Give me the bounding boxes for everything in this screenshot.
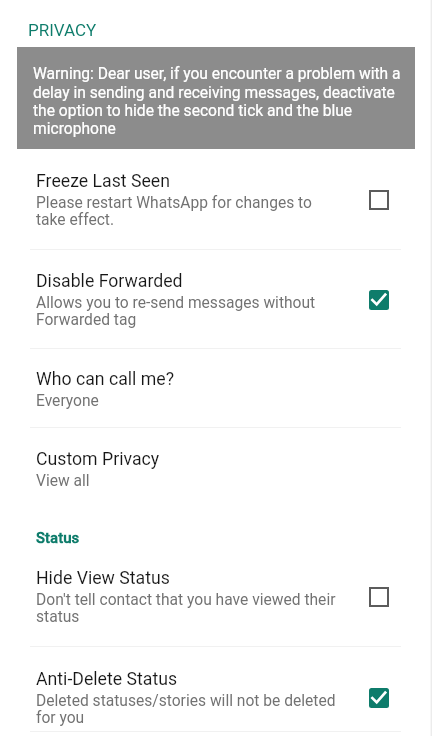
staticText: View all	[36, 472, 341, 490]
button[interactable]: Custom Privacy	[0, 428, 432, 490]
button[interactable]: Who can call me?	[0, 349, 432, 427]
button[interactable]: Freeze Last Seen, disabled	[359, 180, 399, 220]
staticText: Who can call me?	[36, 369, 341, 390]
button[interactable]: Hide View Status	[0, 547, 432, 646]
staticText: Everyone	[36, 392, 341, 410]
button[interactable]: Freeze Last Seen	[0, 149, 432, 249]
button[interactable]: Anti-Delete Status	[0, 647, 432, 731]
staticText: Custom Privacy	[36, 449, 341, 470]
staticText: Status	[36, 529, 80, 547]
staticText: Don't tell contact that you have viewed …	[36, 591, 341, 626]
staticText: Anti-Delete Status	[36, 669, 341, 690]
button[interactable]: Disable Forwarded, enabled	[359, 280, 399, 320]
staticText: Please restart WhatsApp for changes to t…	[36, 194, 341, 229]
staticText: Freeze Last Seen	[36, 171, 341, 192]
staticText: Allows you to re-send messages without F…	[36, 294, 341, 329]
button[interactable]: Disable Forwarded	[0, 250, 432, 348]
staticText: Disable Forwarded	[36, 271, 341, 292]
staticText: PRIVACY	[28, 20, 97, 40]
staticText: Deleted statuses/stories will not be del…	[36, 692, 341, 727]
button[interactable]: Hide View Status, disabled	[359, 577, 399, 617]
staticText: Warning: Dear user, if you encounter a p…	[33, 65, 405, 137]
staticText: Hide View Status	[36, 568, 341, 589]
button[interactable]: Anti-Delete Status, enabled	[359, 678, 399, 718]
